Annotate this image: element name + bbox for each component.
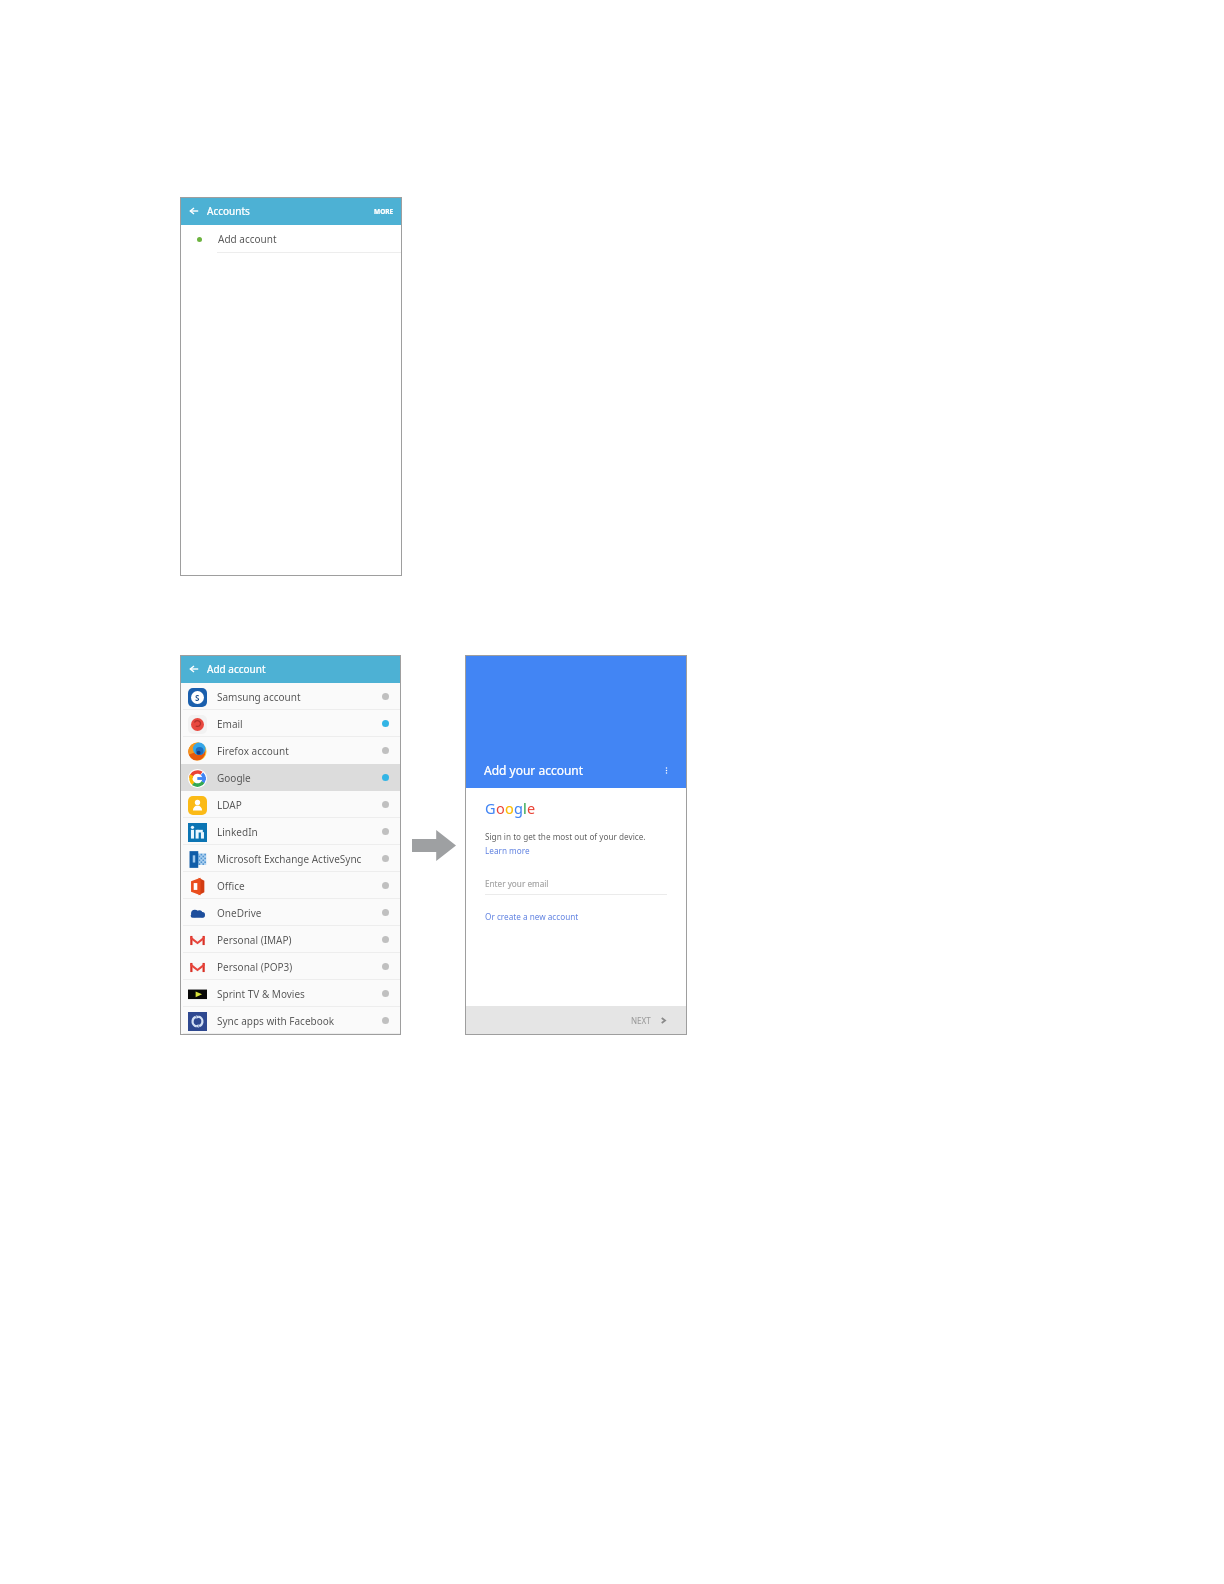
- staticText: LDAP: [217, 798, 242, 812]
- staticText: g: [514, 798, 523, 818]
- button[interactable]: Google: [180, 764, 401, 791]
- staticText: NEXT: [631, 1015, 651, 1026]
- staticText: Personal (IMAP): [217, 933, 292, 947]
- button[interactable]: Add account: [180, 225, 402, 253]
- staticText: l: [523, 798, 527, 818]
- button[interactable]: Back: [188, 205, 200, 217]
- button[interactable]: More options: [659, 763, 673, 777]
- staticText: Sign in to get the most out of your devi…: [485, 831, 646, 842]
- staticText: Or create a new account: [485, 911, 579, 922]
- button[interactable]: Back: [188, 663, 200, 675]
- button[interactable]: Or create a new account: [485, 911, 579, 922]
- staticText: LinkedIn: [217, 825, 258, 839]
- button[interactable]: LinkedIn: [180, 818, 401, 845]
- staticText: o: [505, 798, 514, 818]
- staticText: MORE: [374, 207, 394, 216]
- staticText: Add account: [218, 232, 277, 246]
- button[interactable]: MORE: [372, 205, 396, 218]
- button[interactable]: Firefox account: [180, 737, 401, 764]
- button[interactable]: OneDrive: [180, 899, 401, 926]
- staticText: Accounts: [207, 204, 250, 218]
- staticText: Google: [217, 771, 251, 785]
- staticText: G: [485, 798, 496, 818]
- button[interactable]: Personal (IMAP): [180, 926, 401, 953]
- button[interactable]: Office: [180, 872, 401, 899]
- button[interactable]: Sync apps with Facebook: [180, 1007, 401, 1034]
- staticText: OneDrive: [217, 906, 262, 920]
- staticText: Sync apps with Facebook: [217, 1014, 335, 1028]
- button[interactable]: Sprint TV & Movies: [180, 980, 401, 1007]
- button[interactable]: LDAP: [180, 791, 401, 818]
- staticText: o: [496, 798, 505, 818]
- staticText: Firefox account: [217, 744, 289, 758]
- button[interactable]: Personal (POP3): [180, 953, 401, 980]
- staticText: Add your account: [484, 762, 584, 778]
- staticText: Add account: [207, 662, 266, 676]
- button[interactable]: S: [180, 683, 401, 710]
- staticText: Email: [217, 717, 243, 731]
- button[interactable]: NEXT: [465, 1006, 687, 1035]
- staticText: Learn more: [485, 845, 530, 856]
- button[interactable]: Learn more: [485, 845, 530, 856]
- staticText: Office: [217, 879, 245, 893]
- button[interactable]: Microsoft Exchange ActiveSync: [180, 845, 401, 872]
- staticText: Samsung account: [217, 690, 301, 704]
- button[interactable]: Email: [180, 710, 401, 737]
- staticText: e: [527, 798, 535, 818]
- staticText: Microsoft Exchange ActiveSync: [217, 852, 362, 866]
- staticText: Enter your email: [485, 878, 549, 889]
- staticText: Sprint TV & Movies: [217, 987, 305, 1001]
- staticText: S: [195, 692, 200, 703]
- staticText: Personal (POP3): [217, 960, 293, 974]
